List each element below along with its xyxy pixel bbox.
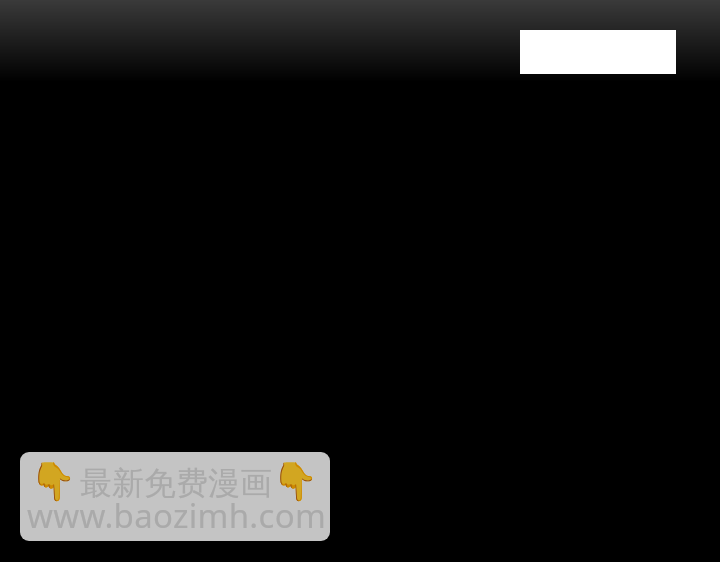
button[interactable]: www.baozimh.com watermark: [20, 452, 330, 541]
staticText: 👇: [272, 460, 319, 503]
staticText: 最新免费漫画: [80, 463, 272, 503]
staticText: www.baozimh.com: [27, 493, 327, 538]
staticText: 👇: [30, 460, 77, 503]
